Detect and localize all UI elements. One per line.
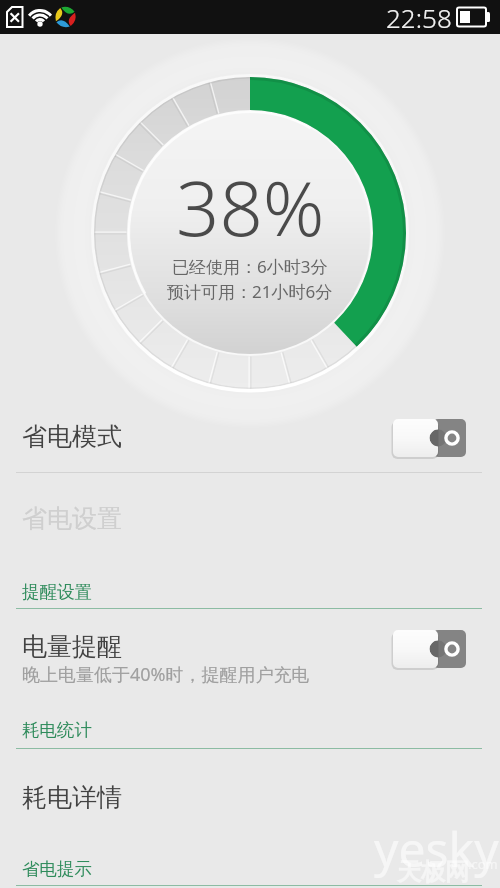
staticText: 提醒设置	[22, 581, 92, 603]
button[interactable]	[0, 480, 500, 552]
staticText: 省电设置	[22, 503, 122, 534]
staticText: 已经使用：6小时3分	[172, 255, 328, 278]
staticText: 电量提醒	[22, 631, 122, 662]
button[interactable]	[0, 752, 500, 830]
button[interactable]: Toggle	[389, 623, 471, 669]
staticText: .com	[468, 855, 498, 873]
staticText: 耗电详情	[22, 782, 122, 813]
button[interactable]	[0, 612, 500, 708]
staticText: 耗电统计	[22, 719, 92, 741]
staticText: 晚上电量低于40%时，提醒用户充电	[22, 662, 310, 687]
staticText: 省电模式	[22, 421, 122, 452]
staticText: 38%	[176, 155, 325, 259]
button[interactable]: Toggle	[389, 412, 471, 458]
button[interactable]	[0, 400, 500, 472]
staticText: yesky	[374, 816, 499, 881]
staticText: 22:58	[386, 0, 452, 34]
staticText: 天极网	[397, 857, 469, 887]
staticText: 预计可用：21小时6分	[167, 280, 333, 303]
staticText: 省电提示	[22, 858, 92, 880]
